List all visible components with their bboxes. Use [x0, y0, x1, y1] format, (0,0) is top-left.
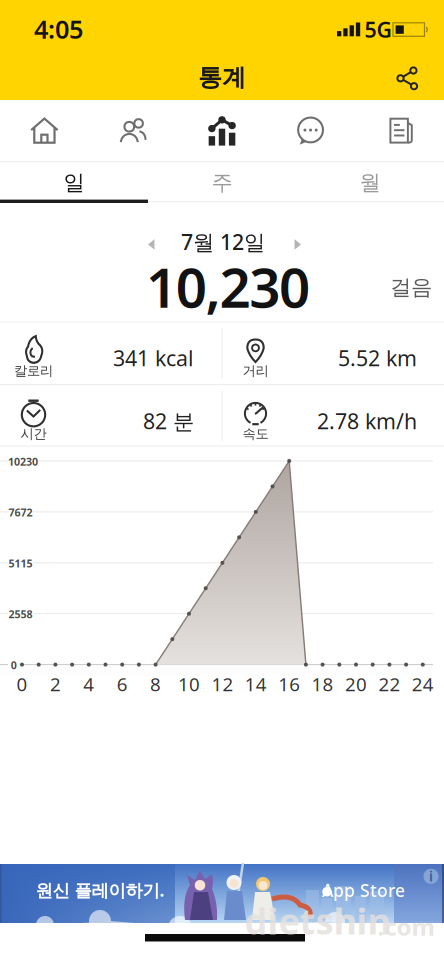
- staticText: 12: [211, 672, 233, 696]
- button[interactable]: 일: [0, 162, 148, 203]
- staticText: 14: [245, 672, 267, 696]
- button[interactable]: 원신 플레이하기 App Store 광고: [0, 864, 444, 923]
- staticText: 8: [150, 672, 161, 696]
- staticText: 4: [83, 672, 94, 696]
- staticText: App Store: [322, 879, 405, 902]
- staticText: 월: [359, 169, 380, 196]
- staticText: 10230: [8, 454, 38, 469]
- staticText: 7월 12일: [181, 227, 265, 256]
- staticText: 341 kcal: [113, 344, 194, 372]
- staticText: 16: [278, 672, 300, 696]
- staticText: 주: [211, 169, 232, 196]
- staticText: 82 분: [143, 407, 194, 435]
- staticText: 통계: [198, 63, 246, 92]
- staticText: 6: [117, 672, 128, 696]
- staticText: 거리: [242, 362, 268, 379]
- staticText: 0: [16, 672, 27, 696]
- button[interactable]: Previous day: [139, 232, 162, 258]
- staticText: 5G: [364, 15, 391, 44]
- staticText: 24: [412, 672, 434, 696]
- staticText: 시간: [20, 425, 46, 442]
- staticText: 0: [11, 658, 17, 672]
- button[interactable]: Home: [0, 100, 89, 161]
- button[interactable]: News: [355, 100, 444, 161]
- staticText: 20: [345, 672, 367, 696]
- button[interactable]: Ad info: [423, 869, 438, 884]
- button[interactable]: 월: [296, 162, 444, 203]
- staticText: 10: [178, 672, 200, 696]
- staticText: i: [429, 867, 433, 885]
- staticText: 7672: [8, 505, 32, 519]
- staticText: 4:05: [34, 12, 83, 46]
- staticText: 칼로리: [14, 362, 53, 379]
- staticText: 걸음: [390, 274, 432, 301]
- staticText: 일: [63, 169, 84, 196]
- staticText: 2: [50, 672, 61, 696]
- button[interactable]: Share: [390, 58, 424, 98]
- staticText: 속도: [242, 425, 268, 442]
- button[interactable]: Next day: [286, 232, 309, 258]
- staticText: 2558: [8, 607, 32, 621]
- staticText: 2.78 km/h: [317, 407, 417, 435]
- staticText: 10,230: [146, 250, 310, 323]
- staticText: 원신 플레이하기.: [35, 878, 164, 901]
- staticText: 5.52 km: [338, 344, 417, 372]
- staticText: dietshin: [244, 897, 390, 944]
- staticText: .com: [377, 911, 434, 942]
- staticText: 22: [378, 672, 400, 696]
- staticText: 5115: [8, 556, 32, 570]
- staticText: 18: [312, 672, 334, 696]
- button[interactable]: Chat: [266, 100, 355, 161]
- button[interactable]: Friends: [89, 100, 178, 161]
- button[interactable]: Statistics: [178, 100, 266, 161]
- button[interactable]: 주: [148, 162, 296, 203]
